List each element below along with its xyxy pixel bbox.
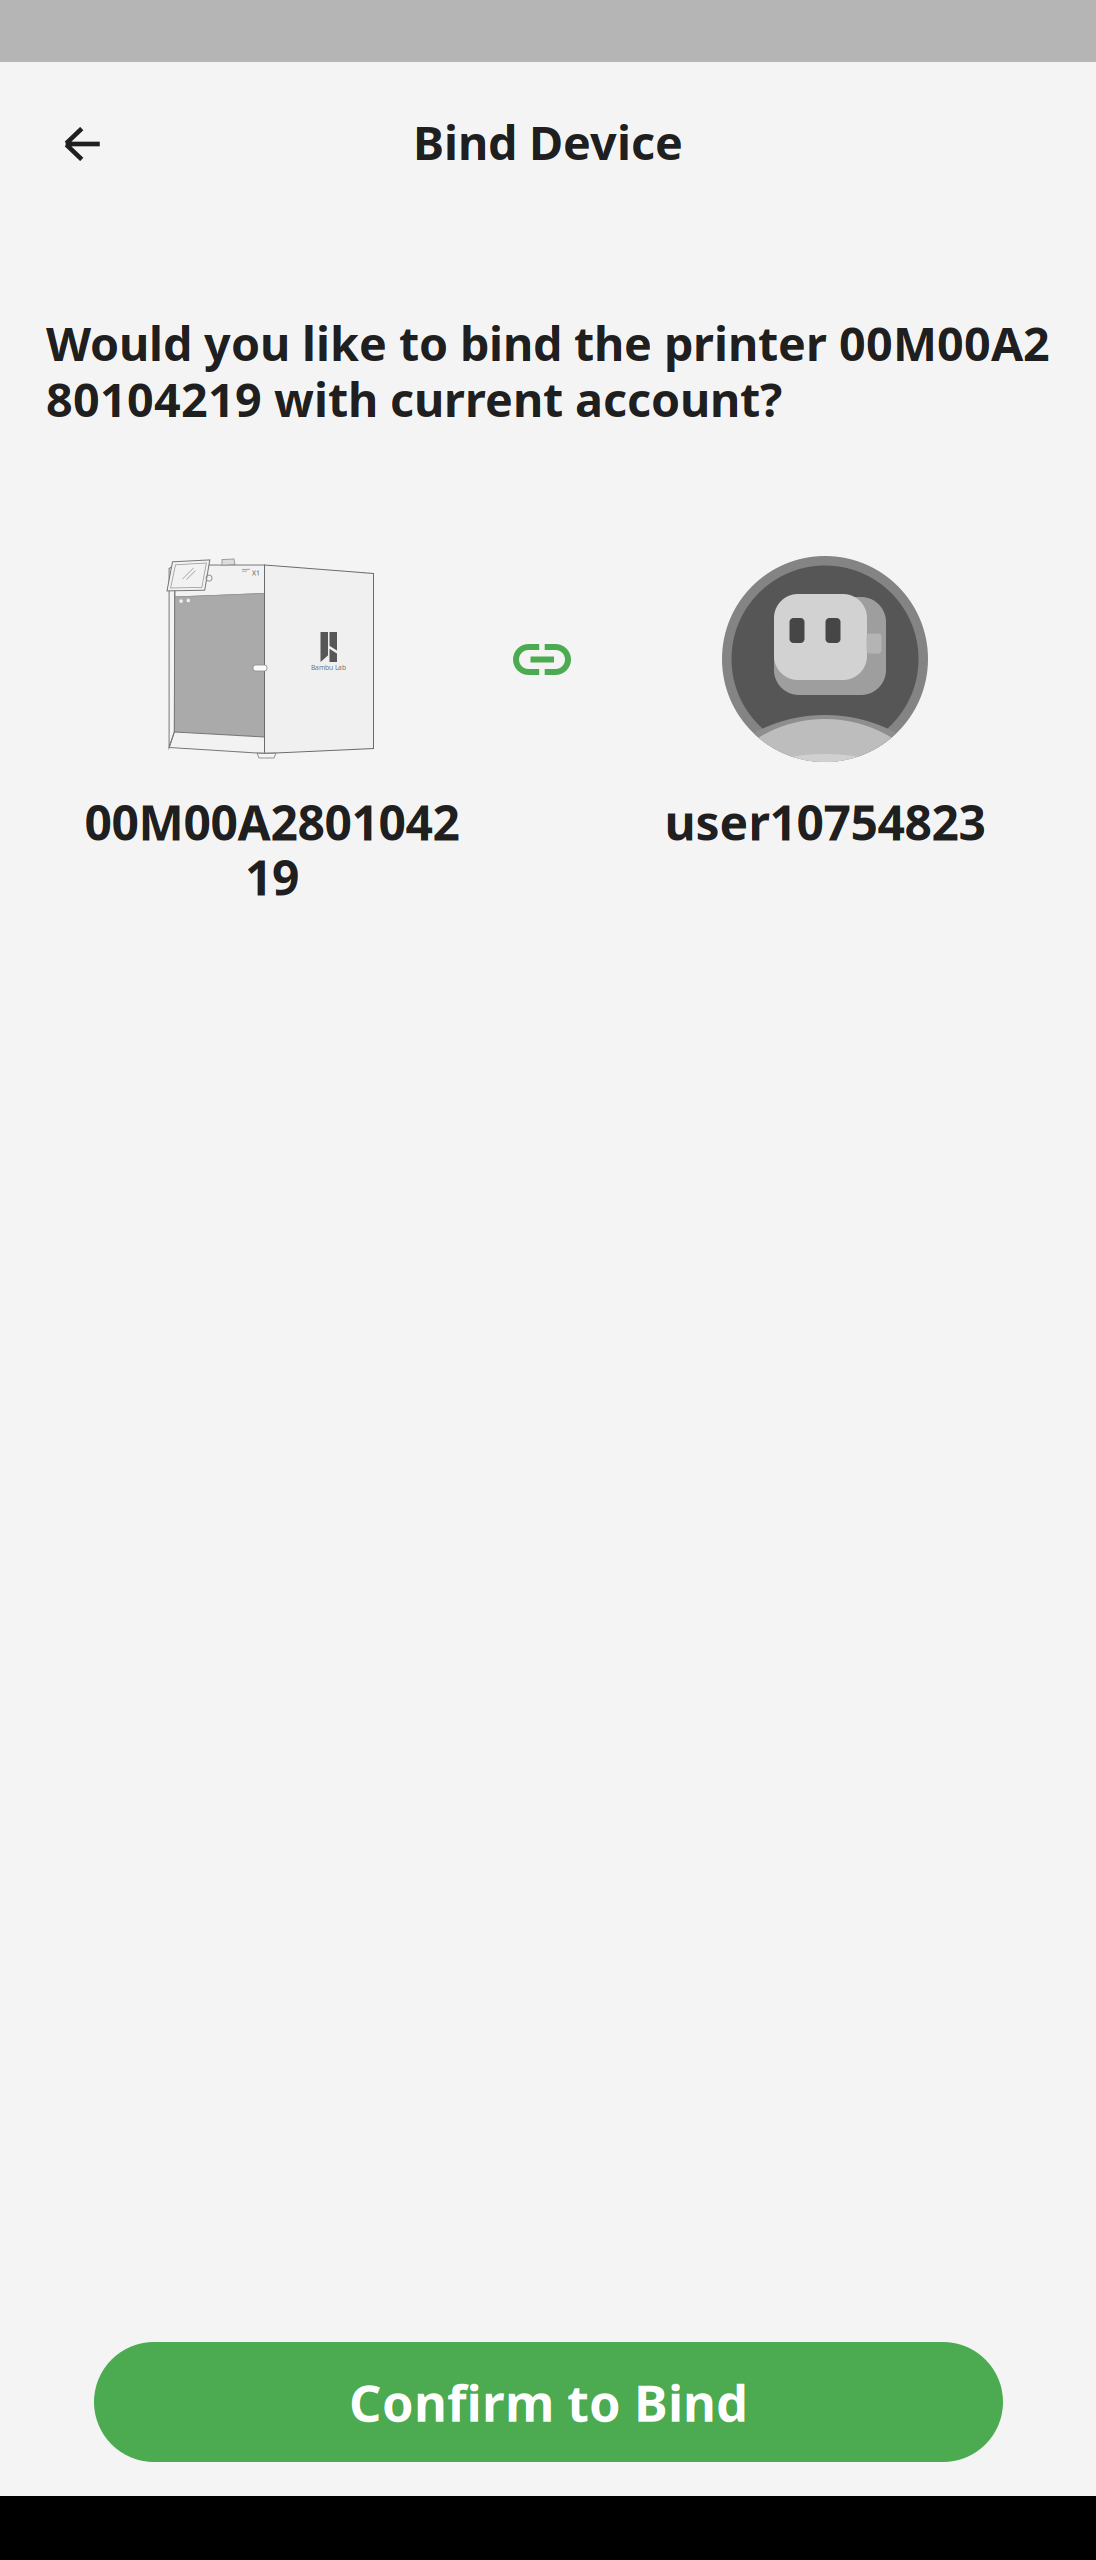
staticText: Bind Device [413,111,683,173]
staticText: 00M00A2801042 [84,790,459,854]
staticText: 80104219 with current account? [46,368,782,430]
staticText: user10754823 [664,790,985,854]
staticText: Would you like to bind the printer 00M00… [46,312,1050,374]
staticText: X1 [252,568,260,577]
staticText: Bambu Lab [311,663,346,672]
button[interactable]: Confirm to Bind [94,2342,1003,2462]
staticText: Confirm to Bind [349,2368,748,2436]
staticText: 19 [245,845,299,909]
button[interactable]: Back [30,92,134,196]
